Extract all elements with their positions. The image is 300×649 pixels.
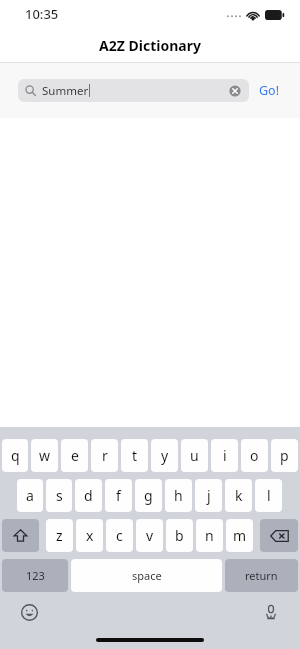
staticText: 123 [26,568,45,583]
staticText: g [144,486,153,505]
staticText: u [190,446,199,465]
staticText: k [235,486,243,505]
staticText: f [116,486,121,505]
button[interactable]: return [225,559,298,592]
staticText: h [174,486,183,505]
button[interactable]: q [2,439,28,472]
button[interactable]: Clear text [228,84,242,98]
staticText: c [116,526,123,545]
staticText: e [71,446,79,465]
button[interactable]: v [136,519,163,552]
button[interactable]: i [211,439,238,472]
staticText: l [267,486,271,505]
staticText: i [223,446,227,465]
staticText: m [233,526,247,545]
staticText: w [39,446,51,465]
button[interactable]: r [91,439,118,472]
staticText: y [161,446,169,465]
button[interactable]: j [195,479,222,512]
button[interactable]: p [271,439,298,472]
button[interactable]: Backspace [260,519,298,552]
staticText: z [56,526,63,545]
button[interactable]: d [75,479,102,512]
button[interactable]: o [241,439,268,472]
staticText: r [102,446,108,465]
button[interactable]: m [226,519,253,552]
button[interactable]: a [17,479,43,512]
staticText: s [56,486,63,505]
staticText: x [86,526,94,545]
button[interactable]: w [31,439,58,472]
staticText: d [84,486,93,505]
staticText: 10:35 [25,5,59,23]
button[interactable]: h [165,479,192,512]
staticText: p [280,446,289,465]
button[interactable]: Go! [249,78,282,103]
button[interactable]: s [46,479,72,512]
button[interactable]: u [181,439,208,472]
button[interactable]: c [106,519,133,552]
staticText: b [175,526,184,545]
staticText: t [132,446,138,465]
staticText: v [146,526,154,545]
button[interactable]: y [151,439,178,472]
button[interactable]: k [225,479,252,512]
button[interactable]: e [61,439,88,472]
staticText: A2Z Dictionary [99,36,201,55]
staticText: j [207,486,211,505]
button[interactable]: space [71,559,222,592]
staticText: space [132,568,162,583]
button[interactable]: t [121,439,148,472]
button[interactable]: Dictation [256,597,286,627]
staticText: a [26,486,34,505]
staticText: Go! [259,82,280,99]
staticText: o [250,446,259,465]
button[interactable]: f [105,479,132,512]
button[interactable]: n [196,519,223,552]
button[interactable]: b [166,519,193,552]
button[interactable]: Emoji keyboard [14,597,44,627]
button[interactable]: z [46,519,73,552]
button[interactable]: g [135,479,162,512]
button[interactable]: l [255,479,282,512]
staticText: q [11,446,20,465]
button[interactable]: x [76,519,103,552]
button[interactable]: Summer [18,79,249,102]
button[interactable]: 123 [2,559,68,592]
staticText: Summer [42,83,89,99]
staticText: return [245,568,278,583]
staticText: n [205,526,214,545]
button[interactable]: Shift [2,519,39,552]
